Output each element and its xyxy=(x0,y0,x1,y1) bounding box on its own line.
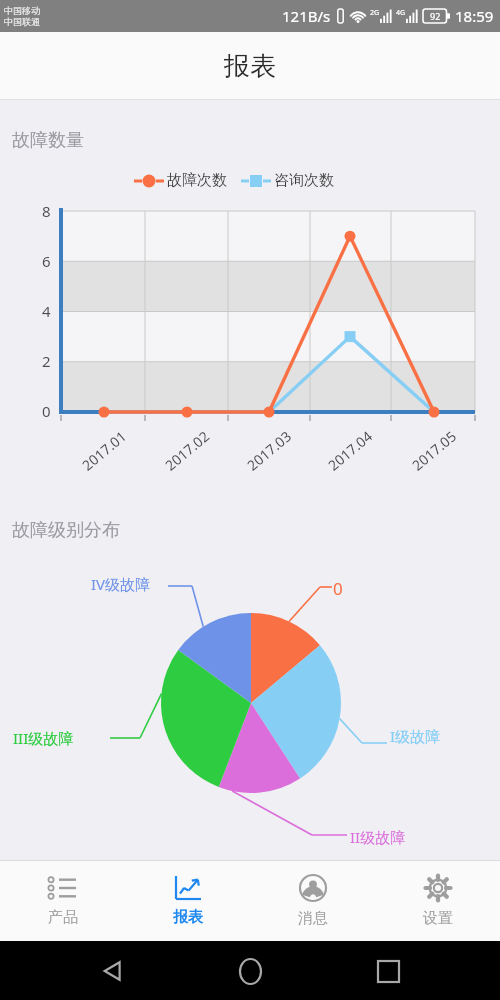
button[interactable]: Back xyxy=(88,946,138,996)
staticText: 6 xyxy=(42,251,51,271)
staticText: II级故障 xyxy=(350,827,406,847)
button[interactable]: Home xyxy=(225,946,275,996)
button[interactable]: 消息 xyxy=(250,861,375,941)
staticText: I级故障 xyxy=(390,726,441,746)
staticText: 2017.02 xyxy=(161,426,213,474)
staticText: 2G xyxy=(370,8,380,18)
staticText: 121B/s xyxy=(282,6,331,26)
staticText: 设置 xyxy=(423,909,453,928)
staticText: 产品 xyxy=(48,908,78,927)
staticText: 2017.04 xyxy=(324,426,376,474)
staticText: 故障级别分布 xyxy=(12,519,120,542)
staticText: 消息 xyxy=(298,909,328,928)
staticText: 8 xyxy=(42,201,51,221)
staticText: 4G xyxy=(396,8,406,18)
staticText: 报表 xyxy=(224,50,276,83)
staticText: 故障数量 xyxy=(12,129,84,152)
staticText: 故障次数 xyxy=(167,171,227,190)
staticText: 18:59 xyxy=(455,6,494,26)
staticText: 0 xyxy=(333,577,343,600)
staticText: III级故障 xyxy=(13,728,74,748)
button[interactable]: 设置 xyxy=(375,861,500,941)
staticText: 92 xyxy=(430,10,441,22)
button[interactable]: 报表 xyxy=(125,861,250,941)
staticText: 2017.01 xyxy=(78,426,130,474)
button[interactable]: 产品 xyxy=(0,861,125,941)
staticText: 2017.05 xyxy=(408,426,460,474)
staticText: 0 xyxy=(42,401,51,421)
staticText: IV级故障 xyxy=(91,574,151,594)
staticText: 2 xyxy=(42,351,51,371)
button[interactable]: Recents xyxy=(363,946,413,996)
staticText: 中国移动 xyxy=(4,5,40,16)
staticText: 报表 xyxy=(173,908,203,927)
staticText: 4 xyxy=(42,301,51,321)
staticText: 咨询次数 xyxy=(274,171,334,190)
staticText: 中国联通 xyxy=(4,16,40,27)
staticText: 2017.03 xyxy=(243,426,295,474)
